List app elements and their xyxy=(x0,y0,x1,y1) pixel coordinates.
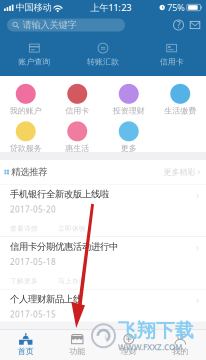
staticText: 请输入关键字 xyxy=(23,19,77,31)
staticText: 个人理财新品上线 xyxy=(10,293,82,305)
button[interactable]: 信用卡分期优惠活动进行中 xyxy=(0,237,206,289)
staticText: 功能 xyxy=(69,346,85,356)
staticText: ? xyxy=(177,20,180,30)
staticText: 贷款服务 xyxy=(10,143,42,153)
staticText: 75% xyxy=(167,1,185,14)
staticText: WWW.FXXZ.COM xyxy=(118,342,182,352)
staticText: 生活缴费 xyxy=(164,106,196,116)
button[interactable]: 首页 xyxy=(0,330,51,360)
staticText: 飞翔下载 xyxy=(118,319,194,342)
staticText: 信用卡 xyxy=(65,106,89,116)
button[interactable]: 账户查询 xyxy=(0,43,69,67)
button[interactable]: 投资理财 xyxy=(103,81,154,118)
staticText: 更多 xyxy=(121,143,137,153)
button[interactable]: 信用卡 xyxy=(137,43,206,67)
staticText: 2017-05-20 xyxy=(10,204,56,215)
button[interactable]: 生活缴费 xyxy=(154,81,206,118)
staticText: 理财 xyxy=(121,346,137,356)
staticText: 精选推荐 xyxy=(11,166,47,178)
staticText: 手机银行全新改版上线啦 xyxy=(10,188,109,200)
staticText: 首页 xyxy=(18,346,34,356)
button[interactable]: 功能 xyxy=(51,330,103,360)
staticText: 惠生活 xyxy=(65,143,89,153)
button[interactable]: 手机银行全新改版上线啦 xyxy=(0,184,206,236)
staticText: 2017-05-15 xyxy=(10,309,56,320)
staticText: 2017-05-18 xyxy=(10,256,56,267)
button[interactable]: 个人理财新品上线 xyxy=(0,289,206,321)
button[interactable]: 我的账户 xyxy=(0,81,51,118)
staticText: 信用卡分期优惠活动进行中 xyxy=(10,241,118,252)
button[interactable]: 精选推荐 xyxy=(0,160,206,184)
button[interactable]: 转账汇款 xyxy=(69,43,137,67)
staticText: 转账汇款 xyxy=(87,57,119,67)
staticText: 账户查询 xyxy=(18,57,50,67)
staticText: 查看详情 立即体验 xyxy=(10,224,86,232)
staticText: 信用卡 xyxy=(160,57,184,67)
button[interactable]: 信用卡 xyxy=(51,81,103,118)
staticText: 我的 xyxy=(172,346,188,356)
button[interactable]: 理财 xyxy=(103,330,154,360)
staticText: 投资理财 xyxy=(113,106,145,116)
staticText: 更多精彩 xyxy=(163,167,195,177)
staticText: 了解更多 马上办理 xyxy=(10,277,86,285)
staticText: 我的账户 xyxy=(10,106,42,116)
button[interactable]: 贷款服务 xyxy=(0,118,51,156)
button[interactable]: 帮助 xyxy=(170,17,187,32)
button[interactable]: 惠生活 xyxy=(51,118,103,156)
staticText: 上午11:23 xyxy=(90,1,131,14)
button[interactable]: 我的 xyxy=(154,330,206,360)
staticText: 中国移动 xyxy=(15,2,51,13)
button[interactable]: 消息 xyxy=(187,17,203,32)
button[interactable]: 更多 xyxy=(103,118,154,156)
